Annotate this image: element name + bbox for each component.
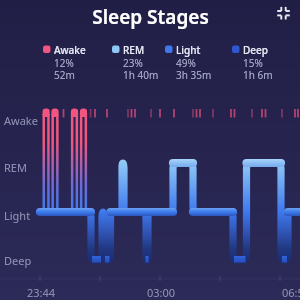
staticText: 23:44	[27, 285, 56, 300]
staticText: 49%	[176, 56, 196, 70]
staticText: 3h 35m	[176, 68, 212, 82]
staticText: 23%	[123, 56, 143, 70]
staticText: Awake	[54, 43, 86, 57]
staticText: REM	[123, 43, 145, 57]
staticText: 52m	[54, 68, 75, 82]
staticText: 12%	[54, 56, 74, 70]
staticText: 15%	[243, 56, 263, 70]
staticText: 1h 40m	[123, 68, 159, 82]
staticText: 06:51	[282, 285, 300, 300]
staticText: 03:00	[147, 285, 176, 300]
staticText: Light	[4, 208, 31, 223]
staticText: 1h 6m	[243, 68, 273, 82]
staticText: Awake	[4, 113, 38, 128]
staticText: Deep	[243, 43, 268, 57]
staticText: Deep	[4, 253, 32, 268]
staticText: REM	[4, 160, 27, 175]
staticText: Sleep Stages	[92, 4, 209, 30]
button[interactable]	[270, 1, 296, 27]
staticText: Light	[176, 43, 201, 57]
